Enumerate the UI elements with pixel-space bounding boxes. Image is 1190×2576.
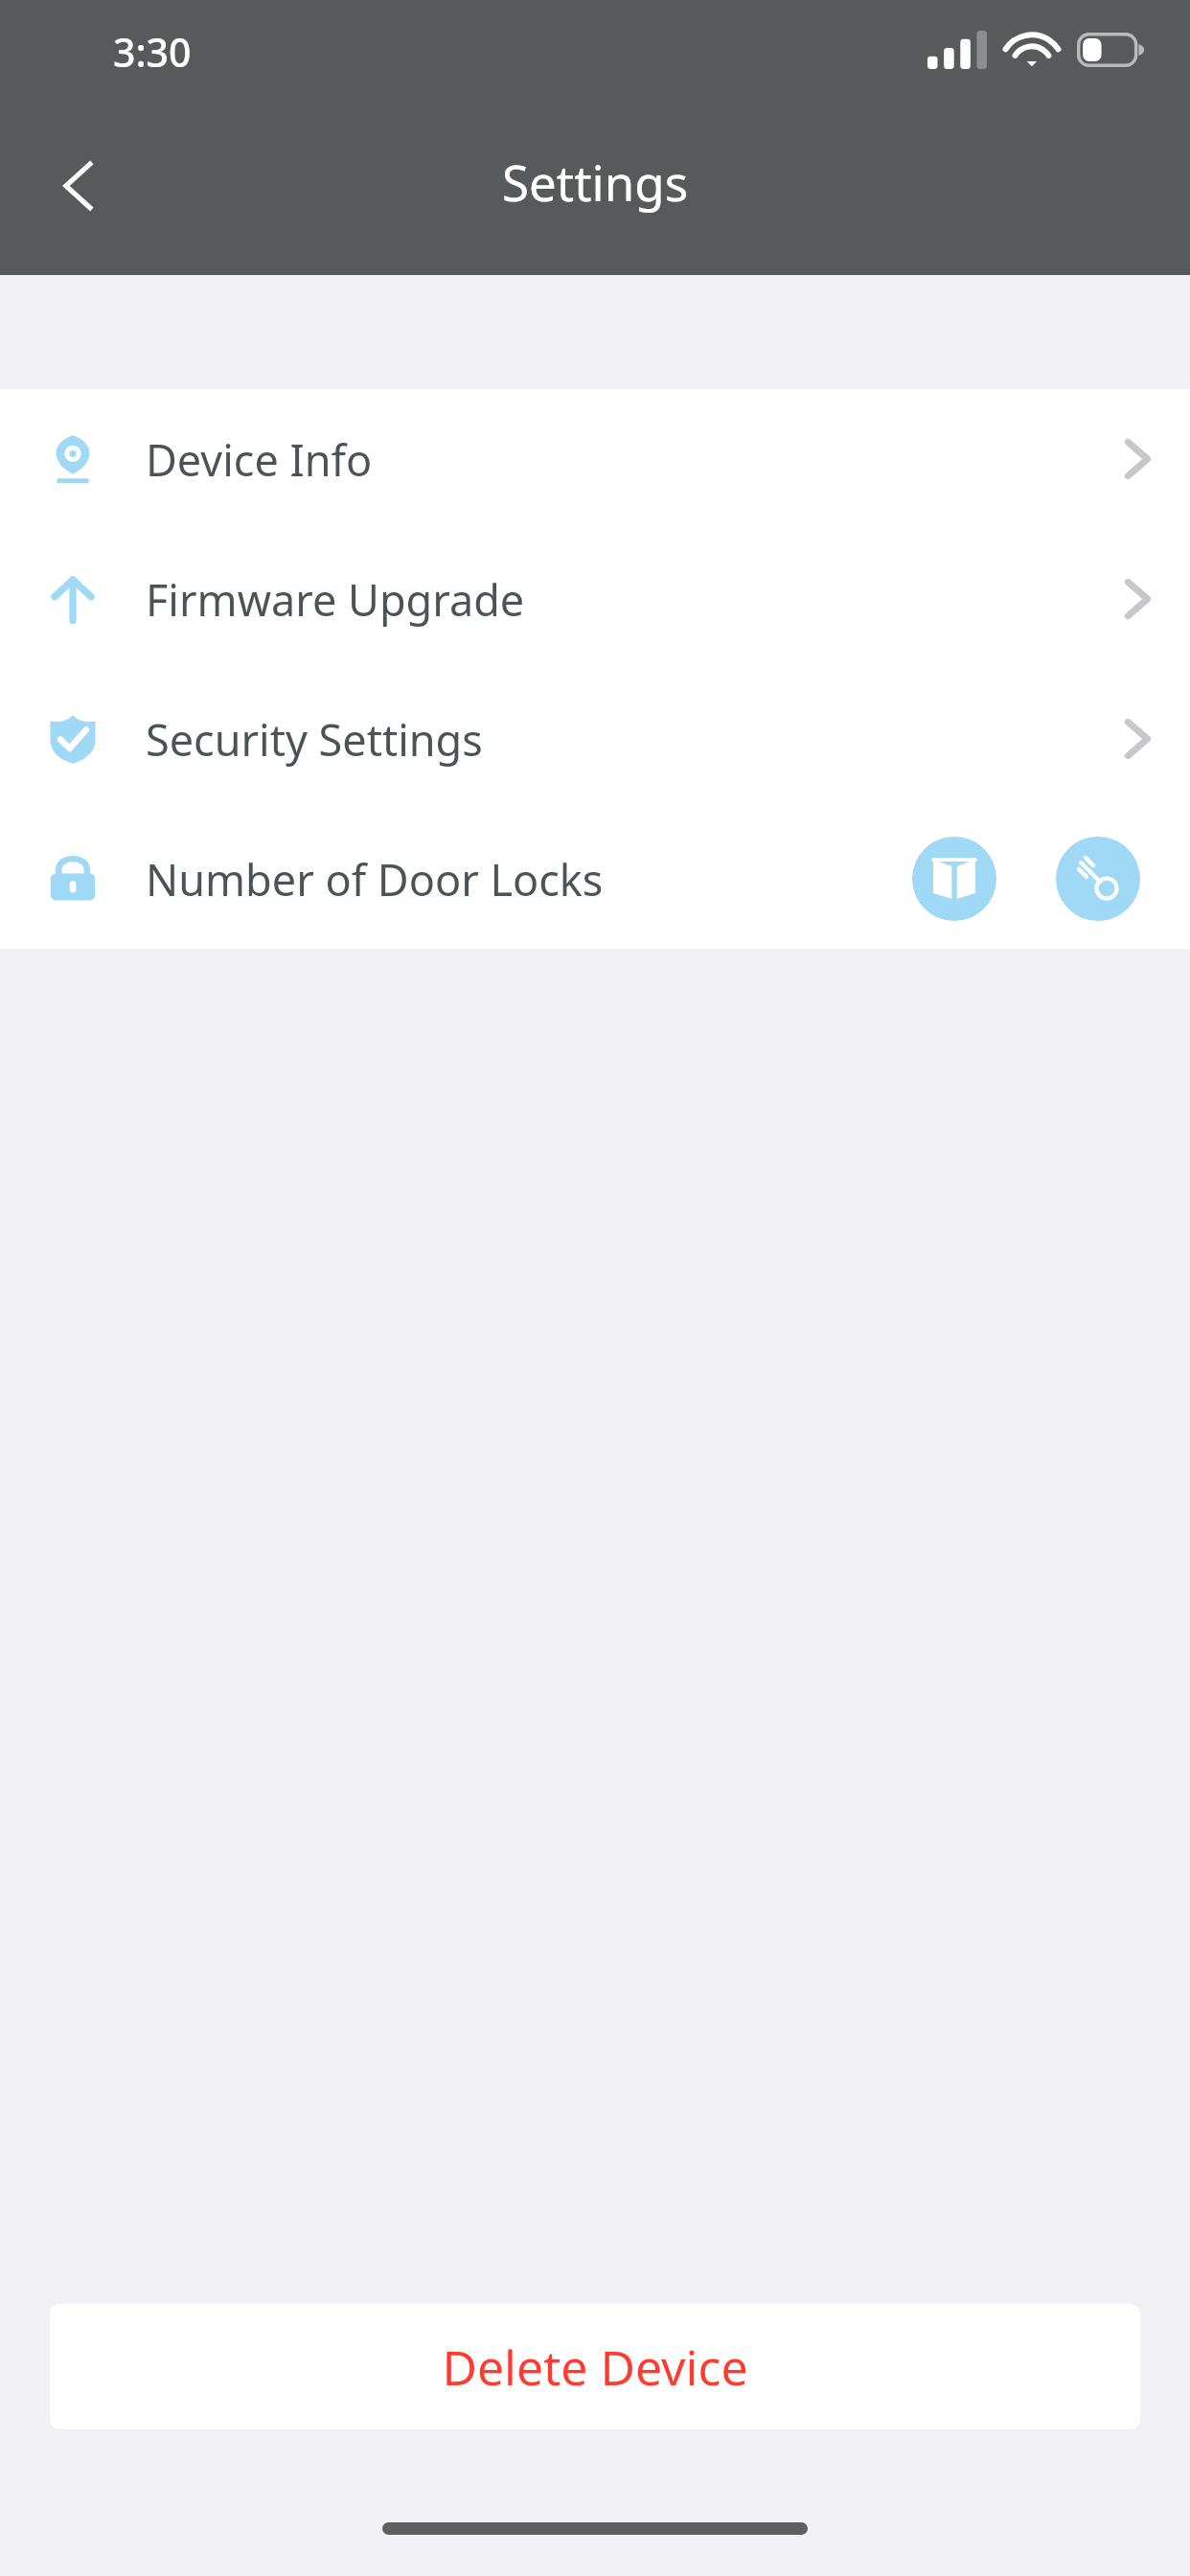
- staticText: Security Settings: [146, 710, 483, 769]
- button[interactable]: Device Info: [0, 389, 1190, 529]
- staticText: Firmware Upgrade: [146, 570, 525, 629]
- staticText: Number of Door Locks: [146, 850, 604, 908]
- button[interactable]: Back: [33, 140, 125, 232]
- button[interactable]: Security Settings: [0, 669, 1190, 809]
- button[interactable]: Single key lock: [1056, 837, 1140, 921]
- staticText: Delete Device: [442, 2334, 748, 2400]
- button[interactable]: Number of Door Locks: [0, 809, 1190, 949]
- staticText: 3:30: [113, 25, 192, 79]
- staticText: Device Info: [146, 430, 373, 489]
- button[interactable]: Delete Device: [50, 2304, 1140, 2429]
- button[interactable]: Double door lock: [912, 837, 996, 921]
- button[interactable]: Firmware Upgrade: [0, 529, 1190, 669]
- staticText: Settings: [502, 149, 689, 215]
